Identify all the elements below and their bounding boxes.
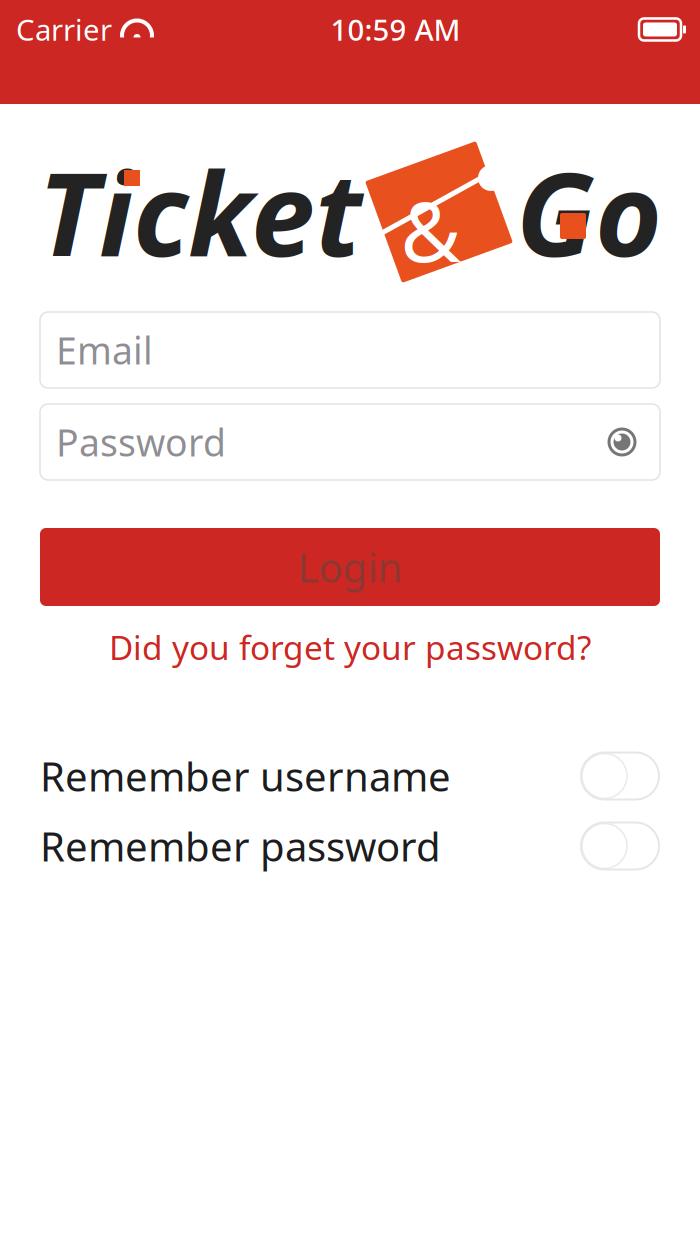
- staticText: Did you forget your password?: [109, 625, 591, 669]
- staticText: Remember username: [40, 749, 451, 802]
- staticText: Login: [297, 540, 402, 593]
- button[interactable]: Show password: [596, 416, 648, 468]
- button[interactable]: Remember username: [0, 742, 700, 810]
- staticText: &: [400, 175, 461, 285]
- button[interactable]: Login: [40, 528, 660, 606]
- staticText: Ticket: [38, 136, 362, 288]
- staticText: Carrier: [16, 10, 112, 49]
- staticText: 10:59 AM: [330, 10, 460, 49]
- staticText: Email: [56, 325, 153, 375]
- button[interactable]: Remember password: [0, 812, 700, 880]
- button[interactable]: Did you forget your password?: [40, 622, 660, 672]
- staticText: Go: [516, 136, 662, 288]
- staticText: Password: [56, 417, 226, 467]
- staticText: Remember password: [40, 819, 441, 872]
